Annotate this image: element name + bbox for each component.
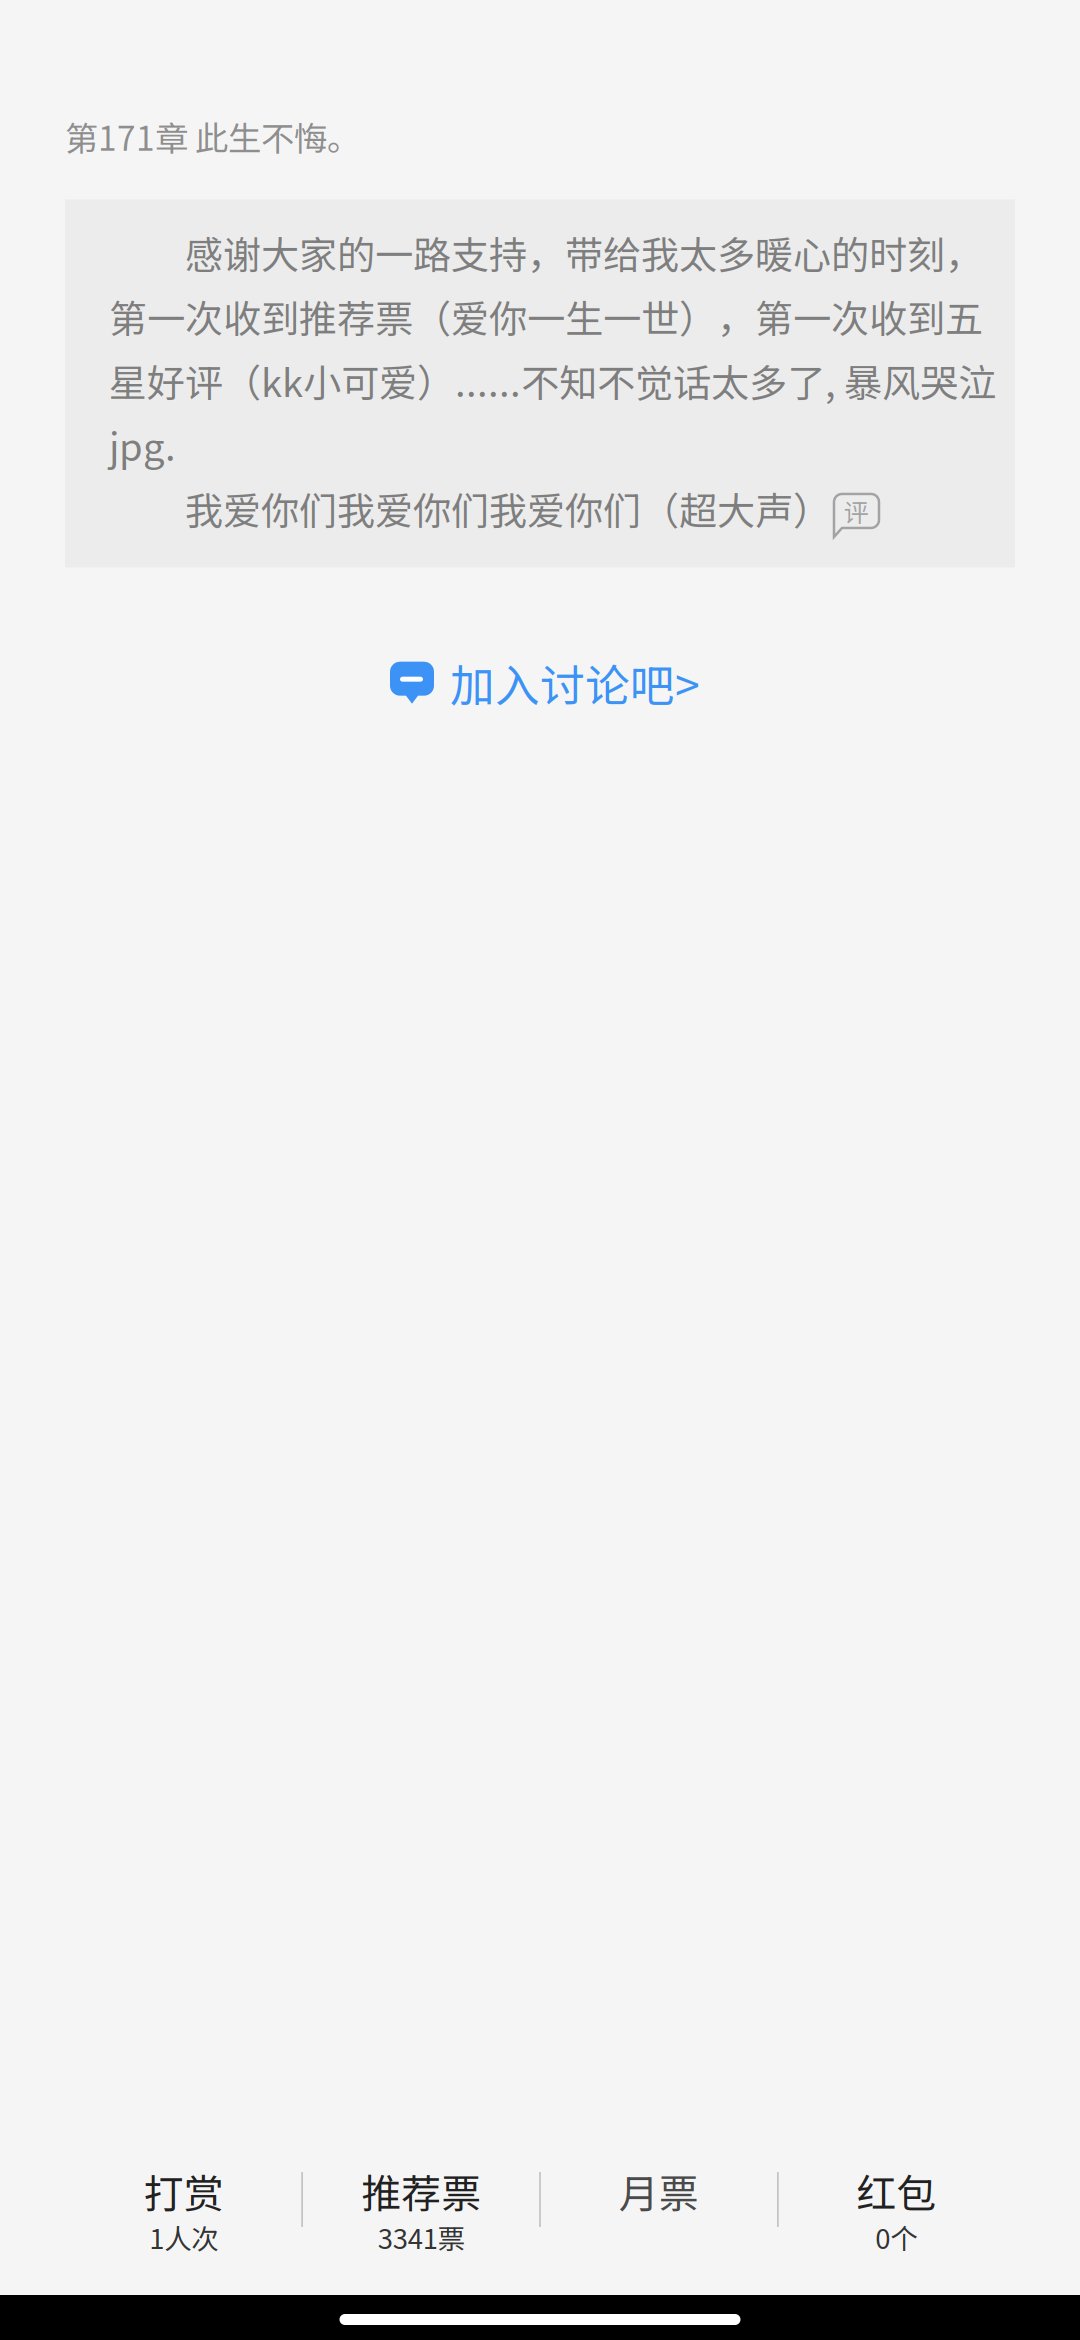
button[interactable]: 红包 [777, 2169, 1015, 2252]
staticText: 评 [843, 493, 868, 529]
staticText: 红包 [856, 2162, 936, 2220]
button[interactable]: 评论 [833, 480, 879, 537]
button[interactable]: 月票 [540, 2169, 777, 2252]
staticText: 打赏 [144, 2162, 224, 2220]
staticText: 星好评（kk小可爱）......不知不觉话太多了, 暴风哭泣 [109, 353, 996, 408]
staticText: jpg. [109, 417, 176, 472]
staticText: 推荐票 [361, 2162, 481, 2220]
staticText: 第一次收到推荐票（爱你一生一世），第一次收到五 [109, 289, 983, 344]
staticText: 感谢大家的一路支持，带给我太多暖心的时刻， [109, 225, 983, 280]
staticText: 0个 [875, 2217, 917, 2257]
button[interactable]: 加入讨论吧> [360, 638, 720, 727]
staticText: 加入讨论吧> [450, 650, 700, 715]
button[interactable]: 打赏 [65, 2169, 302, 2252]
button[interactable]: 推荐票 [302, 2169, 540, 2252]
staticText: 我爱你们我爱你们我爱你们（超大声） [109, 481, 831, 536]
staticText: 月票 [619, 2162, 699, 2220]
staticText: 第171章 此生不悔。 [65, 112, 360, 160]
staticText: 3341票 [378, 2217, 465, 2257]
staticText: 1人次 [149, 2217, 218, 2257]
